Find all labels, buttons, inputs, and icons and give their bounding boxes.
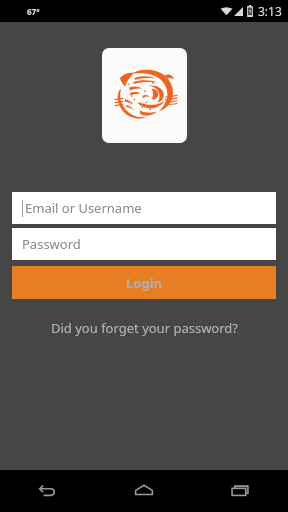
staticText: Login (126, 274, 162, 292)
button[interactable]: Password (12, 228, 276, 260)
button[interactable]: App logo (102, 48, 187, 143)
staticText: Email or Username (25, 199, 142, 217)
staticText: 67° (27, 6, 40, 17)
button[interactable]: Did you forget your password? (0, 316, 288, 340)
staticText: Password (22, 235, 81, 253)
button[interactable]: Recent apps (192, 470, 288, 512)
button[interactable]: Login (12, 266, 276, 299)
button[interactable]: Email or Username (12, 192, 276, 224)
staticText: Did you forget your password? (51, 319, 238, 337)
button[interactable]: Back (0, 470, 96, 512)
button[interactable]: Home (96, 470, 192, 512)
staticText: 3:13 (258, 3, 282, 19)
